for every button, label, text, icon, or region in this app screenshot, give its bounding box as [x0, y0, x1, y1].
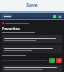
button[interactable]: Category label	[2, 22, 62, 24]
button[interactable]: Favorite item one	[2, 35, 62, 43]
button[interactable]: Accept	[49, 58, 55, 63]
button[interactable]: Favorite item two	[2, 45, 62, 53]
staticText: Favorites	[2, 26, 20, 31]
button[interactable]: Favorite item three	[2, 65, 62, 72]
button[interactable]: More options	[57, 15, 62, 18]
button[interactable]: Delete	[56, 58, 62, 63]
staticText: Save	[26, 2, 38, 9]
button[interactable]: Filter	[2, 14, 12, 18]
button[interactable]: Online	[53, 15, 56, 18]
